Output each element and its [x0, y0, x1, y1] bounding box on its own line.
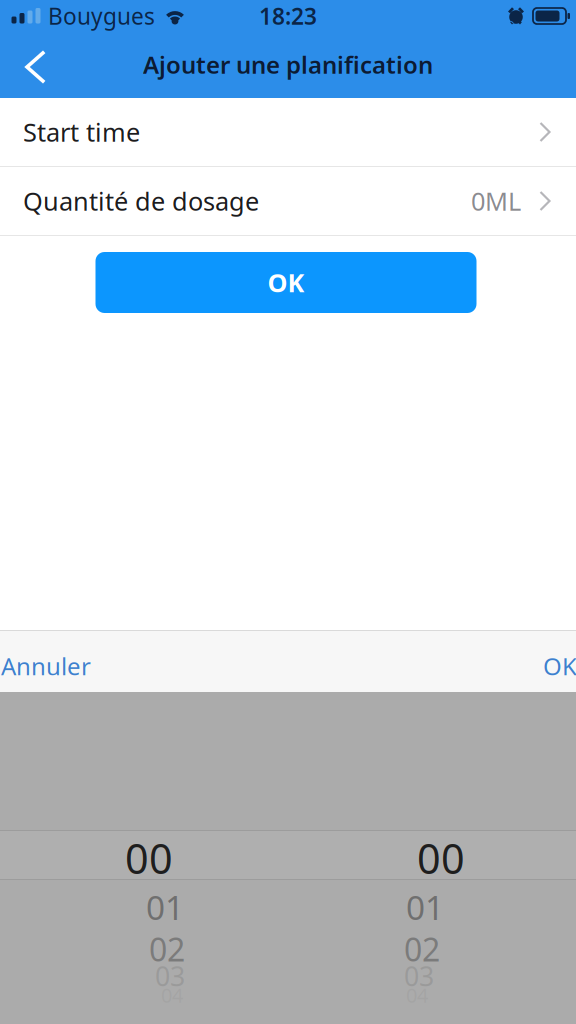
- button[interactable]: OK: [530, 631, 576, 692]
- staticText: 00: [417, 831, 465, 885]
- staticText: 02: [149, 928, 185, 970]
- staticText: 01: [146, 885, 184, 929]
- staticText: 02: [404, 928, 440, 970]
- staticText: 04: [161, 982, 183, 1008]
- staticText: 0ML: [471, 184, 521, 218]
- staticText: OK: [267, 266, 304, 299]
- staticText: Bouygues: [48, 1, 155, 31]
- staticText: 03: [155, 958, 185, 994]
- button[interactable]: Back: [0, 36, 66, 98]
- staticText: Start time: [23, 115, 140, 149]
- button[interactable]: Start time: [0, 98, 576, 166]
- staticText: 00: [125, 831, 173, 885]
- staticText: 01: [406, 885, 444, 929]
- staticText: Quantité de dosage: [23, 184, 259, 218]
- staticText: OK: [543, 650, 576, 682]
- staticText: Annuler: [1, 650, 91, 682]
- staticText: 03: [404, 958, 434, 994]
- button[interactable]: Quantité de dosage: [0, 167, 576, 235]
- staticText: Ajouter une planification: [143, 49, 433, 80]
- staticText: 04: [406, 982, 428, 1008]
- button[interactable]: Annuler: [0, 631, 103, 692]
- button[interactable]: OK: [97, 252, 478, 313]
- staticText: 18:23: [259, 1, 317, 31]
